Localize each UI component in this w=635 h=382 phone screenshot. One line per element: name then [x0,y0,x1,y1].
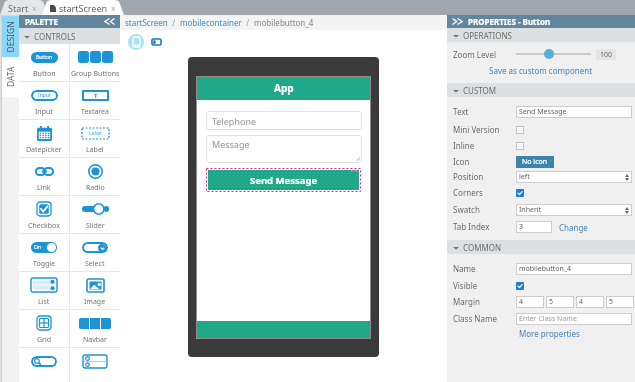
button[interactable]: T [70,82,120,119]
button[interactable]: mobilebutton_4 [516,263,632,275]
staticText: CONTROLS [34,31,76,42]
staticText: Radio [86,183,105,193]
button[interactable]: 5 [546,296,574,308]
staticText: Send Message [250,174,318,187]
staticText: On [34,244,41,251]
staticText: mobilebutton_4 [254,17,314,28]
staticText: / [242,17,254,28]
staticText: 4 [579,297,584,307]
staticText: PROPERTIES - Button [468,16,551,27]
staticText: Inline [453,140,516,151]
staticText: startScreen [59,2,108,14]
button[interactable]: startScreen [44,0,122,15]
button[interactable]: Checkbox [516,126,524,134]
button[interactable]: Button [19,44,69,81]
staticText: DESIGN [4,20,16,52]
staticText: Label [89,130,102,137]
staticText: Button [36,54,53,61]
button[interactable]: PROPERTIES - Button [447,15,635,28]
staticText: Navbar [83,335,107,345]
button[interactable] [19,348,69,382]
button[interactable]: Enter Class Name [516,313,632,325]
button[interactable]: Checkbox checked [516,189,524,197]
button[interactable]: 4 [576,296,604,308]
button[interactable]: Radio [70,158,120,195]
button[interactable]: List [19,272,69,309]
staticText: left [519,172,530,182]
staticText: Message [212,138,250,150]
staticText: Select [85,259,105,269]
button[interactable]: mobilecontainer [180,17,242,28]
button[interactable]: 3 [516,221,552,233]
staticText: Start [8,2,29,14]
button[interactable]: DESIGN [2,16,19,57]
staticText: No icon [522,157,548,167]
button[interactable]: Select [70,234,120,271]
staticText: Enter Class Name [519,314,577,324]
button[interactable]: PALETTE [19,15,120,28]
staticText: 100 [600,50,613,60]
staticText: PALETTE [25,16,58,27]
staticText: Datepicker [26,145,62,155]
button[interactable]: No icon [516,156,554,168]
button[interactable]: Send Message [208,170,359,190]
staticText: App [274,81,294,95]
button[interactable]: More properties [519,328,580,339]
staticText: CUSTOM [463,85,497,96]
button[interactable]: 5 [606,296,634,308]
button[interactable]: 4 [516,296,544,308]
button[interactable]: Image [70,272,120,309]
staticText: Input [35,107,53,117]
button[interactable]: left [516,171,632,183]
staticText: Image [84,297,106,307]
staticText: / [168,17,180,28]
staticText: Icon [453,156,516,167]
button[interactable]: DATA [2,57,19,97]
button[interactable]: On [19,234,69,271]
button[interactable]: Start [0,0,44,15]
staticText: Telephone [212,115,257,127]
staticText: Checkbox [28,221,60,231]
button[interactable]: Label [70,120,120,157]
button[interactable] [70,348,120,382]
staticText: Toggle [33,259,56,269]
staticText: T [94,92,98,100]
button[interactable]: Telephone [206,111,362,130]
staticText: Slider [86,221,105,231]
button[interactable]: startScreen [125,17,168,28]
staticText: Class Name [453,313,516,324]
staticText: Mini Version [453,124,516,135]
button[interactable]: Phone preview [128,34,144,50]
staticText: OPERATIONS [463,30,512,41]
button[interactable]: Checkbox [516,142,524,150]
button[interactable]: Message [206,135,362,163]
button[interactable]: Slider [70,196,120,233]
staticText: × [111,3,116,14]
staticText: Textarea [81,107,109,117]
button[interactable]: Navbar [70,310,120,347]
button[interactable]: Save as custom component [489,65,593,76]
staticText: Button [33,69,56,79]
staticText: COMMON [463,242,501,253]
staticText: Inherit [519,205,542,215]
staticText: × [32,3,37,14]
button[interactable]: Datepicker [19,120,69,157]
staticText: Text [453,106,516,117]
staticText: List [38,297,50,307]
staticText: Position [453,171,516,182]
staticText: 5 [549,297,554,307]
staticText: Input [38,92,51,99]
staticText: Group Buttons [71,69,120,79]
button[interactable]: Group Buttons [70,44,120,81]
button[interactable]: Input [19,82,69,119]
button[interactable]: Checkbox [19,196,69,233]
button[interactable]: Change [559,222,588,233]
button[interactable]: Inherit [516,204,632,216]
button[interactable]: Grid [19,310,69,347]
button[interactable]: Tablet preview [150,36,162,48]
button[interactable]: Send Message [516,106,632,118]
button[interactable]: Link [19,158,69,195]
staticText: Link [37,183,51,193]
staticText: Grid [37,335,52,345]
button[interactable]: Checkbox checked [516,282,524,290]
